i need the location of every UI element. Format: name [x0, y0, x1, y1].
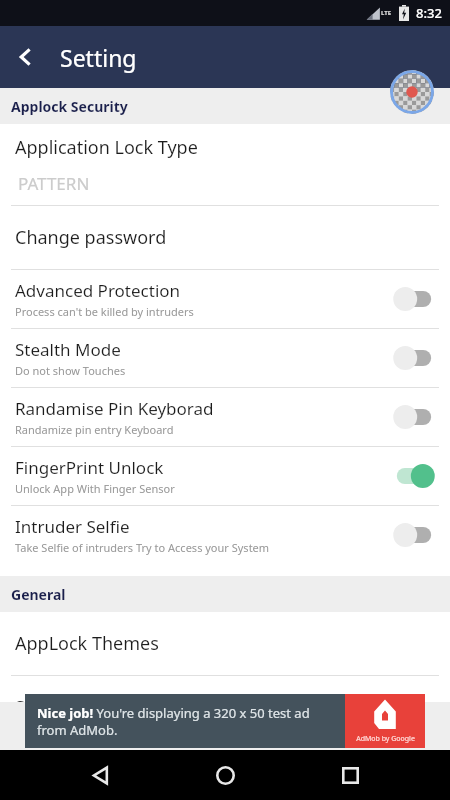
staticText: Sound [15, 695, 70, 720]
staticText: Applock Security [11, 97, 128, 116]
staticText: Stealth Mode [15, 338, 121, 361]
staticText: Setting [60, 42, 137, 73]
button[interactable]: Nice job! You're displaying a 320 x 50 t… [25, 694, 425, 748]
button[interactable]: Recent apps [326, 751, 374, 799]
staticText: Take Selfie of intruders Try to Access y… [15, 540, 270, 555]
staticText: LTE [381, 9, 392, 17]
staticText: 8:32 [416, 4, 442, 22]
staticText: Process can't be killed by intruders [15, 304, 194, 319]
button[interactable]: Change password [0, 206, 450, 269]
button[interactable]: AppLock Themes [0, 612, 450, 675]
staticText: Unlock App With Finger Sensor [15, 481, 175, 496]
button[interactable]: On [392, 463, 436, 489]
button[interactable]: Back [0, 31, 52, 83]
button[interactable]: Home [201, 751, 249, 799]
staticText: Intruder Selfie [15, 515, 130, 538]
staticText: Do not show Touches [15, 363, 126, 378]
staticText: AppLock Themes [15, 631, 159, 656]
staticText: Randamize pin entry Keyboard [15, 422, 174, 437]
staticText: Application Lock Type [15, 135, 198, 160]
button[interactable]: Off [392, 404, 436, 430]
staticText: FingerPrint Unlock [15, 456, 164, 479]
button[interactable]: Off [392, 286, 436, 312]
button[interactable]: Theme preview [390, 70, 434, 114]
button[interactable]: Application Lock Type [0, 124, 450, 205]
button[interactable]: FingerPrint Unlock [0, 447, 450, 505]
staticText: AdMob by Google [356, 734, 415, 744]
button[interactable]: Off [392, 345, 436, 371]
button[interactable]: Randamise Pin Keyborad [0, 388, 450, 446]
button[interactable]: Stealth Mode [0, 329, 450, 387]
staticText: Change password [15, 225, 167, 250]
staticText: Nice job! You're displaying a 320 x 50 t… [37, 704, 339, 739]
staticText: Randamise Pin Keyborad [15, 397, 214, 420]
staticText: General [11, 585, 66, 604]
staticText: Advanced Protection [15, 279, 181, 302]
button[interactable]: Intruder Selfie [0, 506, 450, 564]
staticText: PATTERN [18, 172, 90, 195]
button[interactable]: Back [77, 751, 125, 799]
button[interactable]: Advanced Protection [0, 270, 450, 328]
button[interactable]: Off [392, 522, 436, 548]
button[interactable]: Sound [0, 676, 450, 739]
